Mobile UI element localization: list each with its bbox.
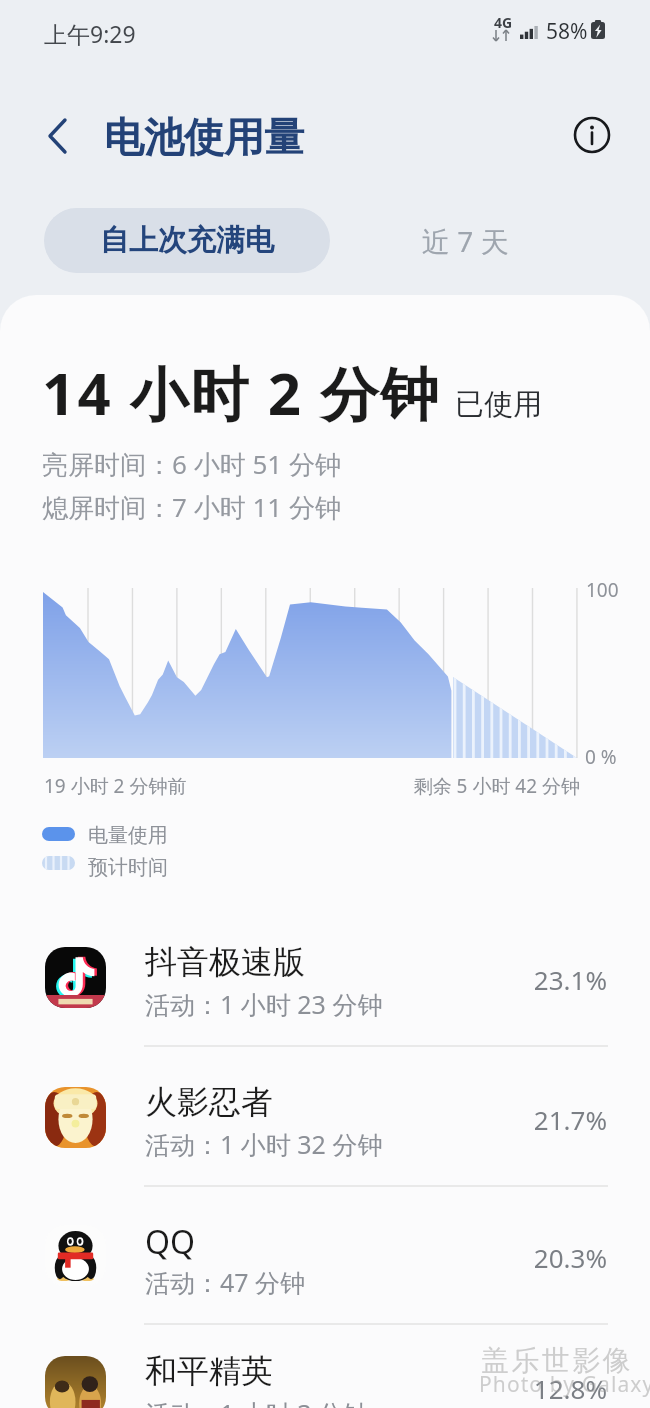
- button[interactable]: 抖音极速版: [0, 907, 650, 1044]
- staticText: 0 %: [585, 744, 617, 770]
- button[interactable]: 近 7 天: [350, 208, 580, 273]
- staticText: 已使用: [455, 386, 542, 423]
- staticText: 4G: [494, 13, 513, 32]
- staticText: 上午9:29: [44, 18, 136, 49]
- staticText: 21.7%: [490, 1102, 607, 1137]
- staticText: 火影忍者: [145, 1082, 273, 1122]
- staticText: 14 小时 2 分钟: [42, 353, 441, 432]
- button[interactable]: QQ: [0, 1185, 650, 1322]
- button[interactable]: 火影忍者: [0, 1047, 650, 1184]
- staticText: 100: [586, 577, 619, 603]
- staticText: 活动：1 小时 32 分钟: [145, 1127, 383, 1161]
- staticText: 电池使用量: [104, 112, 304, 162]
- staticText: 12.8%: [490, 1371, 607, 1406]
- staticText: 盖乐世影像: [480, 1343, 632, 1378]
- staticText: 近 7 天: [422, 222, 509, 260]
- staticText: 活动：47 分钟: [145, 1265, 306, 1299]
- staticText: 抖音极速版: [145, 942, 305, 982]
- staticText: Photo by Galaxy: [479, 1370, 650, 1399]
- staticText: 23.1%: [490, 962, 607, 997]
- button[interactable]: Back: [22, 108, 78, 164]
- staticText: 20.3%: [490, 1240, 607, 1275]
- button[interactable]: Information: [564, 107, 620, 163]
- button[interactable]: 自上次充满电: [44, 208, 330, 273]
- staticText: 19 小时 2 分钟前: [44, 773, 187, 799]
- button[interactable]: 和平精英: [0, 1316, 650, 1408]
- staticText: 活动：1 小时 3 分钟: [145, 1396, 369, 1408]
- staticText: 亮屏时间：6 小时 51 分钟: [42, 446, 341, 482]
- staticText: 58%: [546, 17, 588, 46]
- staticText: 电量使用: [88, 823, 168, 848]
- staticText: 自上次充满电: [100, 222, 274, 259]
- staticText: QQ: [145, 1220, 195, 1264]
- staticText: 剩余 5 小时 42 分钟: [380, 773, 580, 799]
- staticText: 预计时间: [88, 855, 168, 880]
- staticText: 活动：1 小时 23 分钟: [145, 987, 383, 1021]
- staticText: 熄屏时间：7 小时 11 分钟: [42, 489, 341, 525]
- staticText: 和平精英: [145, 1351, 273, 1391]
